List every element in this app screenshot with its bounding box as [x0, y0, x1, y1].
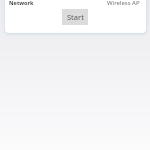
staticText: Wireless AP [107, 0, 140, 7]
staticText: Start [67, 12, 84, 22]
button[interactable]: Wireless AP [104, 0, 142, 9]
staticText: Network [9, 0, 34, 7]
button[interactable]: Network [6, 0, 36, 9]
button[interactable]: Start [62, 9, 88, 25]
